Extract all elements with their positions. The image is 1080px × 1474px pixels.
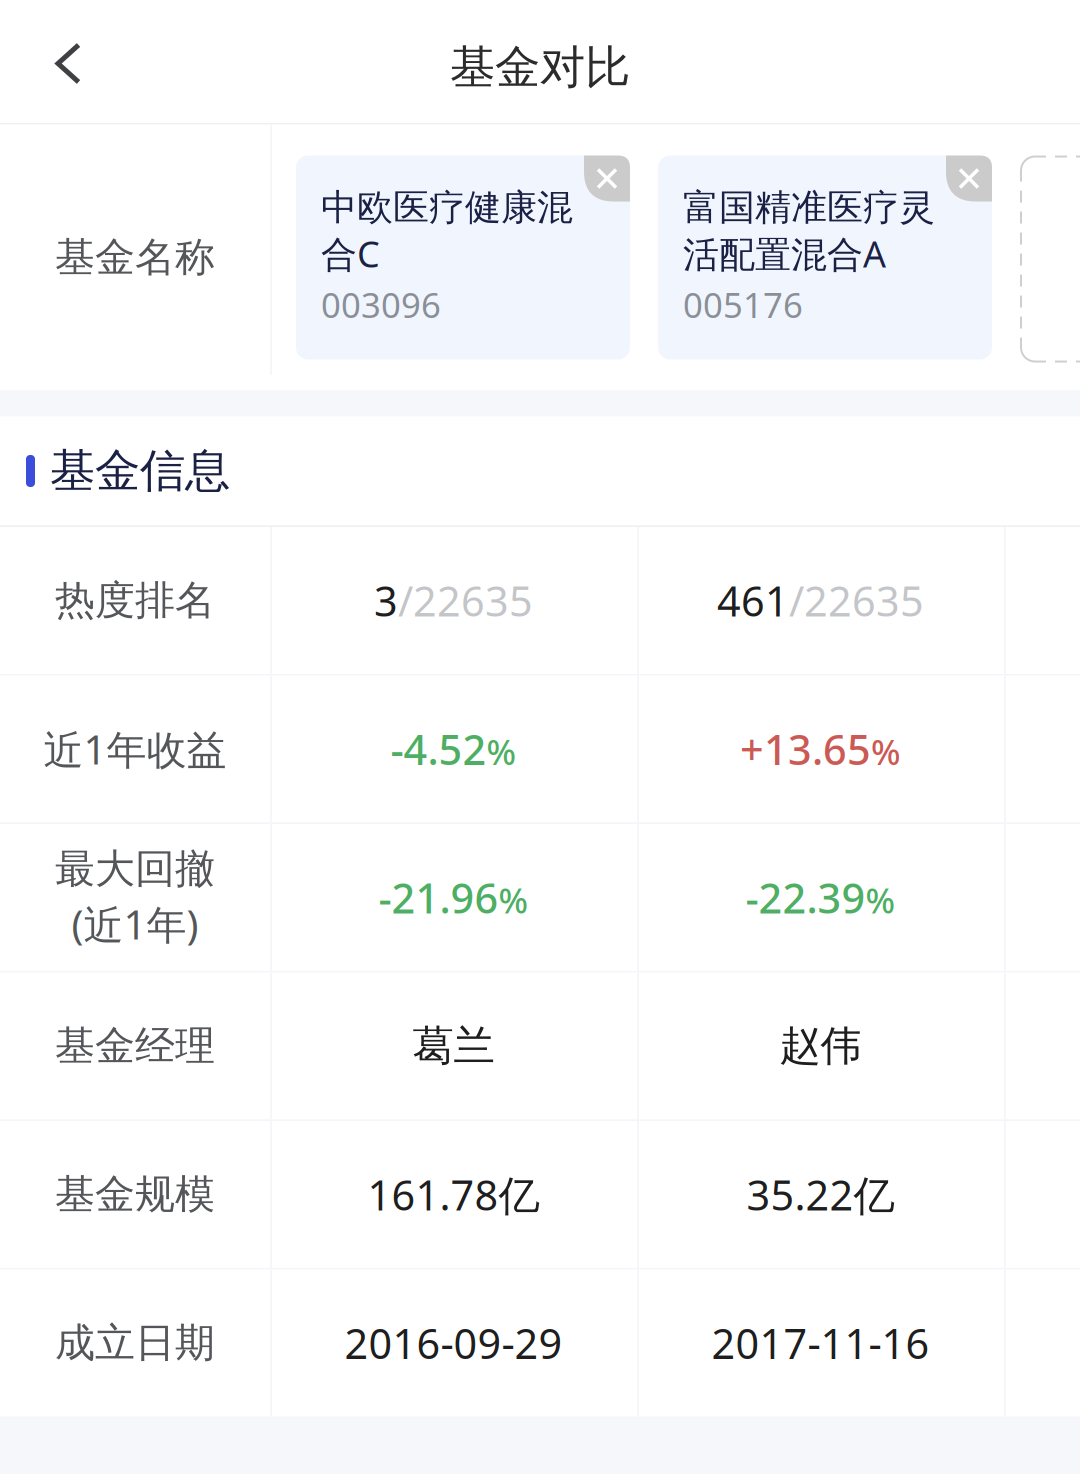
- staticText: 基金对比: [450, 40, 630, 95]
- staticText: 35.22亿: [746, 1167, 894, 1222]
- staticText: 基金信息: [50, 443, 230, 499]
- staticText: 2017-11-16: [711, 1316, 929, 1370]
- staticText: -22.39: [745, 870, 865, 925]
- staticText: 近1年收益: [43, 722, 226, 775]
- staticText: 热度排名: [55, 576, 215, 625]
- staticText: 基金经理: [55, 1021, 215, 1070]
- button[interactable]: [946, 155, 992, 201]
- button[interactable]: [584, 155, 630, 201]
- staticText: 基金名称: [55, 233, 215, 282]
- staticText: 3: [374, 573, 398, 628]
- staticText: 005176: [683, 281, 803, 327]
- button[interactable]: 中欧医疗健康混: [296, 155, 630, 359]
- staticText: 赵伟: [779, 1021, 861, 1071]
- staticText: 成立日期: [55, 1318, 215, 1367]
- staticText: 富国精准医疗灵: [683, 185, 935, 230]
- button[interactable]: [0, 0, 137, 123]
- staticText: 2016-09-29: [344, 1316, 562, 1370]
- staticText: /22635: [789, 573, 924, 628]
- staticText: %: [871, 729, 901, 775]
- staticText: 461: [717, 573, 789, 628]
- staticText: /22635: [398, 573, 533, 628]
- button[interactable]: [1020, 155, 1080, 362]
- staticText: (近1年): [71, 897, 198, 951]
- staticText: %: [486, 729, 516, 775]
- staticText: -4.52: [390, 722, 486, 776]
- staticText: %: [498, 877, 528, 923]
- staticText: 最大回撤: [55, 844, 215, 893]
- staticText: +13.65: [740, 722, 871, 776]
- staticText: 基金规模: [55, 1170, 215, 1219]
- staticText: %: [865, 877, 895, 923]
- staticText: 葛兰: [412, 1021, 494, 1071]
- staticText: 003096: [321, 281, 441, 327]
- staticText: 161.78亿: [367, 1167, 539, 1222]
- staticText: 中欧医疗健康混: [321, 185, 573, 230]
- staticText: -21.96: [378, 870, 498, 925]
- button[interactable]: 富国精准医疗灵: [658, 155, 992, 359]
- staticText: 合C: [321, 230, 380, 277]
- staticText: 活配置混合A: [683, 230, 886, 277]
